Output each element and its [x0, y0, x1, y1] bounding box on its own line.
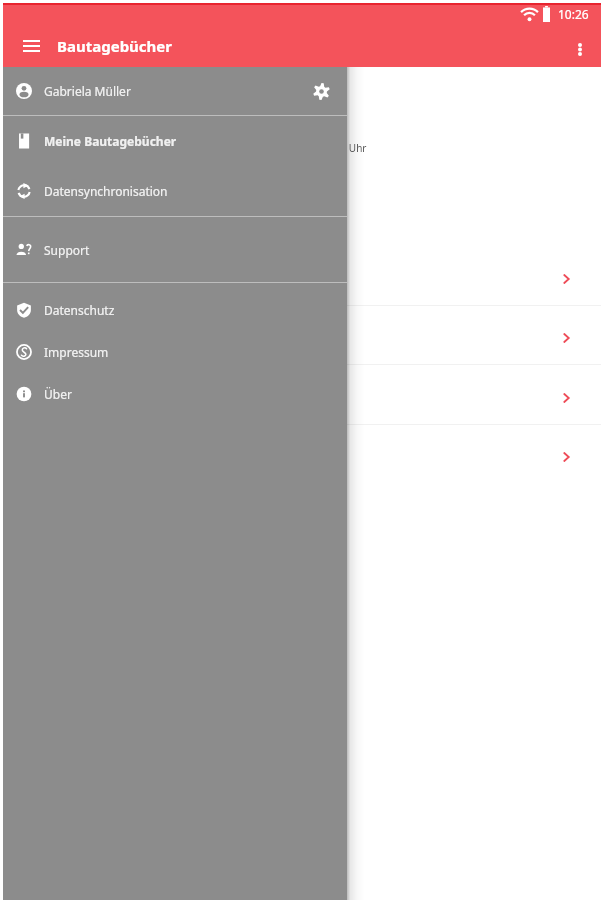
staticText: Meine Bautagebücher [44, 133, 177, 149]
button[interactable]: Open navigation drawer [14, 29, 48, 63]
button[interactable]: Open entry [551, 383, 581, 413]
button[interactable]: Impressum [3, 331, 347, 373]
button[interactable]: Meine Bautagebücher [3, 116, 347, 166]
button[interactable]: Settings [304, 74, 338, 108]
staticText: Datenschutz [44, 302, 115, 318]
button[interactable]: Über [3, 373, 347, 415]
button[interactable]: Open entry [551, 323, 581, 353]
staticText: Datensynchronisation [44, 183, 168, 199]
staticText: Support [44, 242, 90, 258]
button[interactable]: Support [3, 217, 347, 282]
button[interactable]: Datensynchronisation [3, 166, 347, 216]
button[interactable]: Datenschutz [3, 289, 347, 331]
staticText: Donnerstag, 21. Mai 2020, 10:26 Uhr [195, 141, 367, 155]
staticText: Bautagebücher [57, 36, 173, 56]
button[interactable]: Open entry [551, 442, 581, 472]
button[interactable]: More options [563, 29, 597, 63]
staticText: 10:26 [558, 6, 589, 22]
staticText: Impressum [44, 344, 109, 360]
button[interactable]: Gabriela Müller [3, 67, 347, 115]
staticText: Über [44, 386, 72, 402]
button[interactable]: Open entry [551, 264, 581, 294]
staticText: Gabriela Müller [44, 83, 131, 99]
